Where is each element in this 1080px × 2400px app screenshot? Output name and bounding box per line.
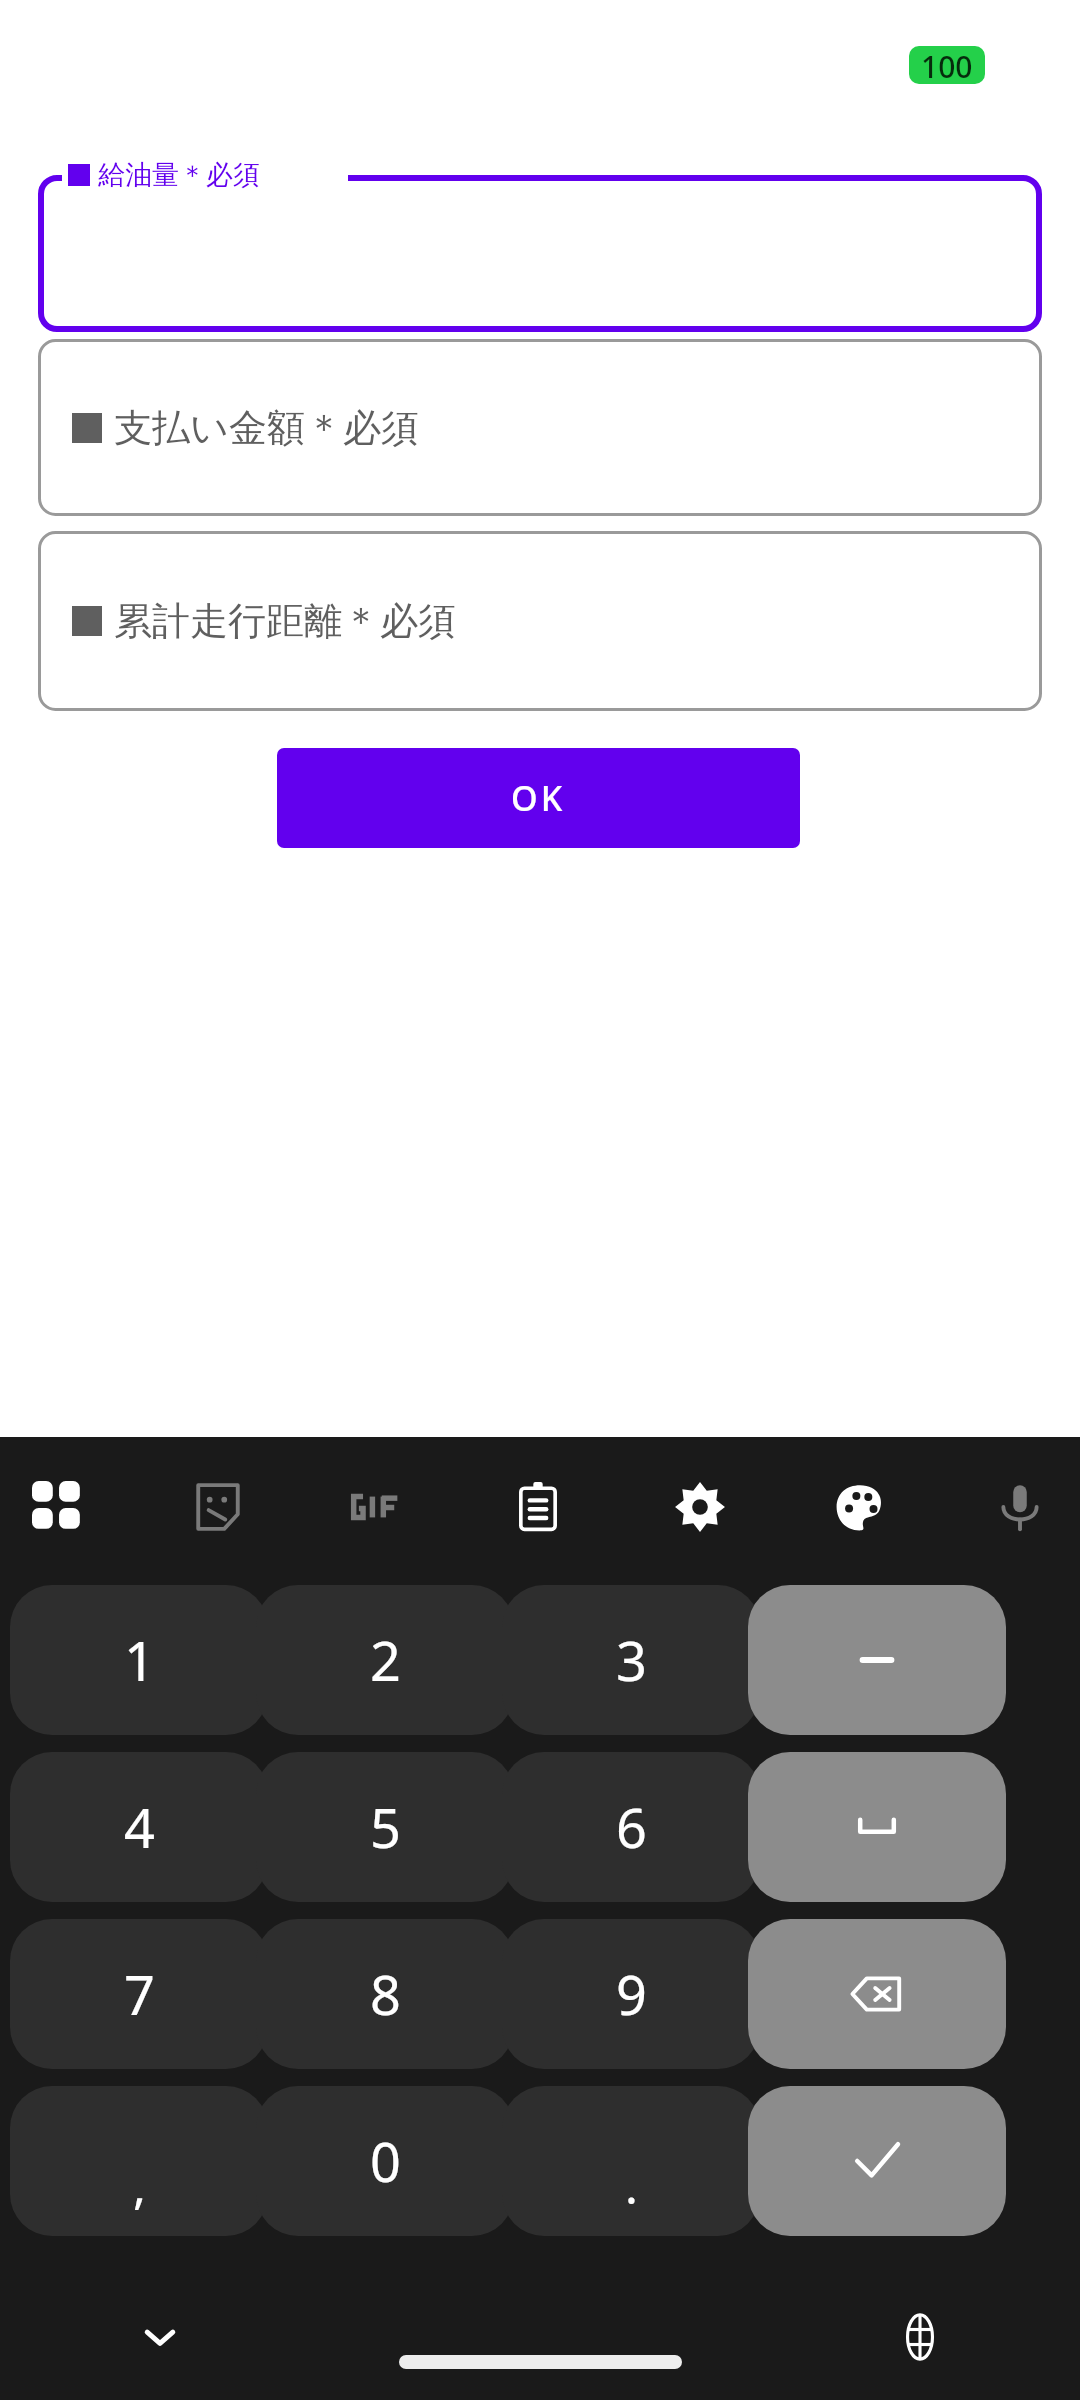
button[interactable]: Change language [880,2297,960,2377]
button[interactable]: Themes [816,1463,904,1551]
button[interactable]: 累計走行距離＊必須 [38,531,1042,711]
staticText: 2 [370,1623,401,1697]
staticText: 100 [921,46,973,84]
button[interactable]: Hide keyboard [120,2297,200,2377]
button[interactable]: 2 [256,1585,514,1735]
button[interactable]: 支払い金額＊必須 [38,339,1042,516]
button[interactable]: 7 [10,1919,268,2069]
staticText: 累計走行距離＊必須 [114,597,456,645]
button[interactable]: 5 [256,1752,514,1902]
button[interactable]: Space [748,1752,1006,1902]
staticText: 給油量＊必須 [98,158,260,192]
button[interactable]: Stickers [174,1463,262,1551]
button[interactable]: Backspace [748,1919,1006,2069]
button[interactable]: 3 [502,1585,760,1735]
button[interactable]: OK [277,748,800,848]
button[interactable]: 6 [502,1752,760,1902]
button[interactable]: GIF [331,1463,419,1551]
button[interactable]: Enter [748,2086,1006,2236]
staticText: 支払い金額＊必須 [114,404,419,452]
button[interactable]: 1 [10,1585,268,1735]
button[interactable]: Voice input [976,1463,1064,1551]
staticText: 0 [370,2124,401,2198]
staticText: . [625,2153,638,2218]
staticText: 5 [370,1790,401,1864]
button[interactable]: 4 [10,1752,268,1902]
button[interactable]: 8 [256,1919,514,2069]
staticText: 3 [616,1623,647,1697]
button[interactable]: . [502,2086,760,2236]
staticText: 7 [124,1957,155,2031]
staticText: 8 [370,1957,401,2031]
button[interactable]: 0 [256,2086,514,2236]
staticText: , [133,2153,146,2218]
button[interactable]: 給油量＊必須 [38,175,1042,332]
button[interactable]: , [10,2086,268,2236]
staticText: 6 [616,1790,647,1864]
staticText: 4 [124,1790,155,1864]
staticText: 9 [616,1957,647,2031]
button[interactable]: Settings [656,1463,744,1551]
button[interactable]: 9 [502,1919,760,2069]
button[interactable]: Clipboard [494,1463,582,1551]
staticText: OK [511,775,566,821]
button[interactable]: Switch keyboard [14,1463,102,1551]
staticText: 1 [124,1623,155,1697]
button[interactable]: Minus [748,1585,1006,1735]
